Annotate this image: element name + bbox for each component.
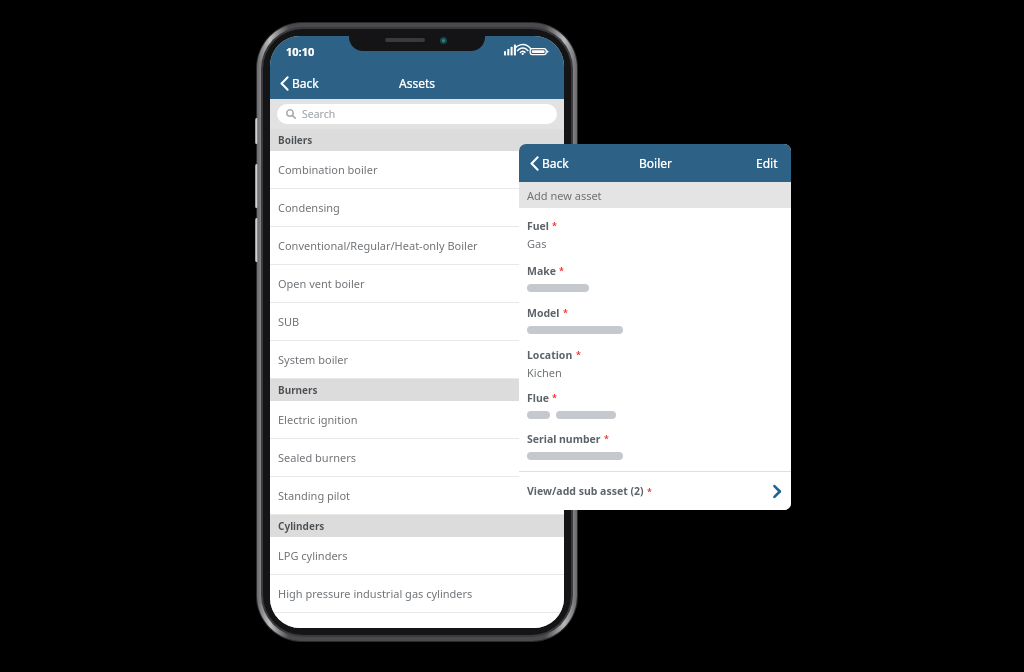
staticText: Sealed burners [278, 450, 357, 465]
staticText: * [559, 264, 564, 276]
button[interactable]: LPG cylinders [270, 537, 564, 575]
staticText: Fuel [527, 219, 549, 233]
staticText: Conventional/Regular/Heat-only Boiler [278, 238, 478, 253]
staticText: System boiler [278, 352, 349, 367]
staticText: * [647, 485, 652, 497]
button[interactable]: Open vent boiler [270, 265, 564, 303]
staticText: Assets [399, 75, 436, 91]
button[interactable]: Back [527, 150, 572, 176]
staticText: * [604, 432, 609, 444]
button[interactable]: SUB [270, 303, 564, 341]
staticText: SUB [278, 314, 300, 329]
button[interactable]: Back [277, 71, 322, 95]
button[interactable]: Sealed burners [270, 439, 564, 477]
staticText: Combination boiler [278, 162, 378, 177]
staticText: Standing pilot [278, 488, 351, 503]
staticText: Search [302, 107, 336, 121]
button[interactable]: Condensing [270, 189, 564, 227]
button[interactable]: View/add sub asset (2) [519, 472, 791, 510]
staticText: Flue [527, 391, 549, 405]
staticText: Condensing [278, 200, 340, 215]
staticText: Back [542, 155, 569, 171]
staticText: * [576, 348, 581, 360]
staticText: Add new asset [527, 188, 602, 203]
button[interactable]: Conventional/Regular/Heat-only Boiler [270, 227, 564, 265]
staticText: View/add sub asset (2) [527, 484, 644, 498]
other: Open sub assets [773, 485, 781, 498]
staticText: Cylinders [278, 519, 325, 533]
staticText: Serial number [527, 432, 601, 446]
button[interactable]: Combination boiler [270, 151, 564, 189]
staticText: * [552, 391, 557, 403]
staticText: Location [527, 348, 573, 362]
button[interactable]: Standing pilot [270, 477, 564, 515]
staticText: High pressure industrial gas cylinders [278, 586, 473, 601]
staticText: * [552, 219, 557, 231]
button[interactable]: System boiler [270, 341, 564, 379]
staticText: Electric ignition [278, 412, 358, 427]
staticText: Gas [527, 236, 547, 251]
staticText: Back [292, 75, 319, 91]
staticText: Kichen [527, 365, 562, 380]
staticText: Model [527, 306, 560, 320]
staticText: Boiler [639, 155, 672, 171]
staticText: * [563, 306, 568, 318]
button[interactable]: Search [277, 104, 557, 124]
staticText: Burners [278, 383, 318, 397]
staticText: LPG cylinders [278, 548, 348, 563]
staticText: 10:10 [286, 44, 315, 59]
button[interactable]: Edit [743, 147, 791, 179]
button[interactable]: High pressure industrial gas cylinders [270, 575, 564, 613]
staticText: Boilers [278, 133, 313, 147]
staticText: Open vent boiler [278, 276, 365, 291]
button[interactable]: Electric ignition [270, 401, 564, 439]
staticText: Make [527, 264, 556, 278]
staticText: Edit [756, 155, 778, 171]
